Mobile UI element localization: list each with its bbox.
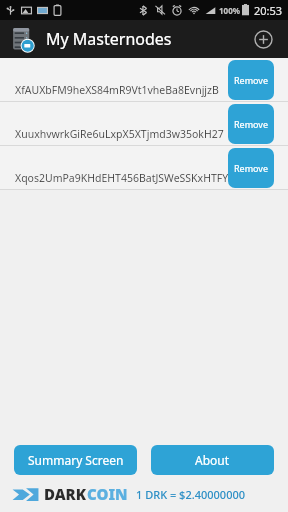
staticText: COIN	[87, 484, 128, 504]
staticText: Remove	[234, 74, 269, 86]
button[interactable]: XfAUXbFM9heXS84mR9Vt1vheBa8EvnjjzB	[0, 58, 288, 102]
button[interactable]: Add masternode	[248, 24, 278, 54]
staticText: Remove	[234, 162, 269, 174]
staticText: XuuxhvwrkGiRe6uLxpX5XTjmd3w35okH27	[15, 127, 224, 141]
button[interactable]: Summary Screen	[14, 445, 137, 475]
button[interactable]: Remove	[228, 148, 274, 188]
staticText: My Masternodes	[46, 28, 172, 50]
staticText: XfAUXbFM9heXS84mR9Vt1vheBa8EvnjjzB	[15, 83, 219, 97]
staticText: Summary Screen	[28, 452, 124, 468]
button[interactable]: Xqos2UmPa9KHdEHT456BatJSWeSSKxHTFY	[0, 146, 288, 190]
button[interactable]: About	[151, 445, 274, 475]
staticText: 100%	[219, 5, 240, 16]
staticText: About	[195, 452, 230, 468]
staticText: DARK	[44, 484, 87, 504]
button[interactable]: Remove	[228, 104, 274, 144]
staticText: Xqos2UmPa9KHdEHT456BatJSWeSSKxHTFY	[15, 171, 229, 185]
staticText: Remove	[234, 118, 269, 130]
button[interactable]: XuuxhvwrkGiRe6uLxpX5XTjmd3w35okH27	[0, 102, 288, 146]
button[interactable]: Remove	[228, 60, 274, 100]
staticText: 20:53	[254, 3, 283, 18]
staticText: 1 DRK = $2.40000000	[136, 487, 246, 502]
